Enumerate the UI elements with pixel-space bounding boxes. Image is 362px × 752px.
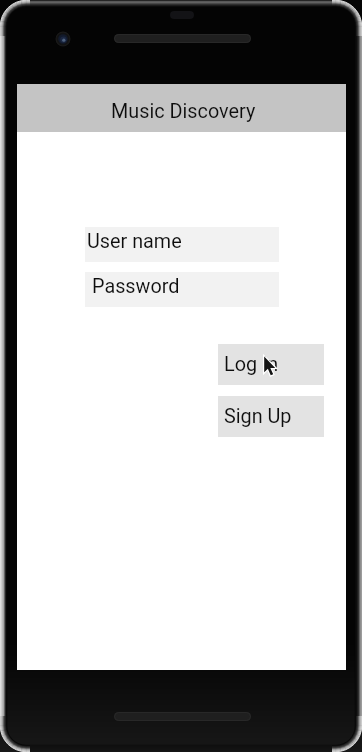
button[interactable]: Music Discovery: [17, 84, 346, 132]
button[interactable]: User name: [85, 227, 279, 262]
staticText: Password: [92, 275, 180, 298]
button[interactable]: Log In: [218, 344, 324, 385]
staticText: Music Discovery: [111, 100, 256, 123]
button[interactable]: Sign Up: [218, 396, 324, 437]
button[interactable]: Password: [85, 272, 279, 307]
staticText: User name: [87, 230, 182, 253]
staticText: Sign Up: [224, 405, 292, 428]
staticText: Log In: [224, 353, 279, 376]
